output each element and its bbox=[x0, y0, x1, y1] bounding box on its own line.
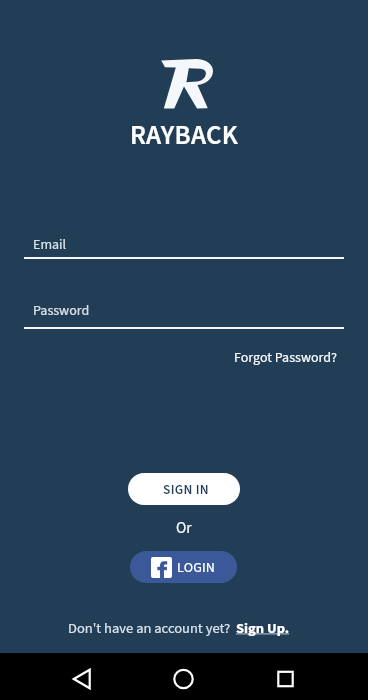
button[interactable] bbox=[158, 653, 210, 700]
button[interactable]: Password bbox=[24, 297, 344, 329]
button[interactable]: SIGN IN bbox=[128, 473, 240, 505]
staticText: Password bbox=[33, 301, 90, 321]
button[interactable]: Sign Up. bbox=[236, 618, 290, 639]
staticText: LOGIN bbox=[177, 558, 216, 578]
staticText: Or bbox=[176, 517, 192, 539]
staticText: Don't have an account yet? bbox=[68, 618, 234, 639]
staticText: RAYBACK bbox=[130, 116, 238, 154]
button[interactable] bbox=[260, 653, 312, 700]
staticText: Email bbox=[33, 235, 67, 255]
button[interactable]: Forgot Password? bbox=[234, 348, 337, 368]
button[interactable]: Email bbox=[24, 231, 344, 259]
button[interactable] bbox=[58, 653, 110, 700]
button[interactable]: LOGIN bbox=[130, 551, 237, 583]
staticText: SIGN IN bbox=[163, 480, 209, 499]
